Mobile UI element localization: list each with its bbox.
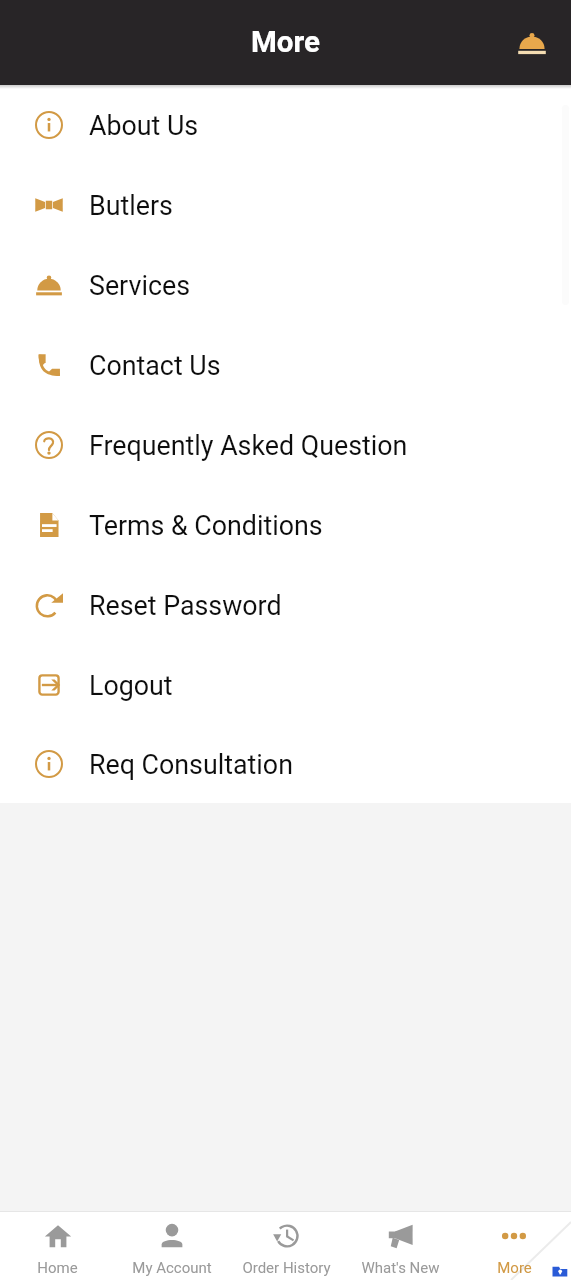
- staticText: Order History: [242, 1259, 331, 1277]
- staticText: More: [251, 25, 320, 60]
- staticText: Butlers: [89, 190, 173, 221]
- button[interactable]: About Us: [0, 85, 571, 165]
- button[interactable]: Frequently Asked Question: [0, 405, 571, 485]
- staticText: Reset Password: [89, 590, 282, 621]
- staticText: More: [497, 1259, 532, 1277]
- button[interactable]: Req Consultation: [0, 725, 571, 803]
- button[interactable]: Services: [0, 245, 571, 325]
- button[interactable]: My Account: [115, 1216, 229, 1277]
- staticText: Terms & Conditions: [89, 510, 323, 541]
- staticText: Logout: [89, 670, 173, 701]
- staticText: About Us: [89, 110, 199, 141]
- staticText: Req Consultation: [89, 749, 293, 780]
- button[interactable]: Contact Us: [0, 325, 571, 405]
- button[interactable]: Order History: [229, 1216, 343, 1277]
- button[interactable]: Terms & Conditions: [0, 485, 571, 565]
- staticText: Contact Us: [89, 350, 221, 381]
- staticText: Services: [89, 270, 190, 301]
- button[interactable]: What's New: [343, 1216, 457, 1277]
- staticText: Frequently Asked Question: [89, 430, 408, 461]
- button[interactable]: More: [457, 1216, 571, 1277]
- button[interactable]: Room service: [507, 18, 557, 68]
- button[interactable]: Logout: [0, 645, 571, 725]
- button[interactable]: Home: [0, 1216, 115, 1277]
- button[interactable]: Reset Password: [0, 565, 571, 645]
- button[interactable]: Butlers: [0, 165, 571, 245]
- staticText: My Account: [132, 1259, 212, 1277]
- staticText: What's New: [361, 1259, 440, 1277]
- staticText: Home: [37, 1259, 78, 1277]
